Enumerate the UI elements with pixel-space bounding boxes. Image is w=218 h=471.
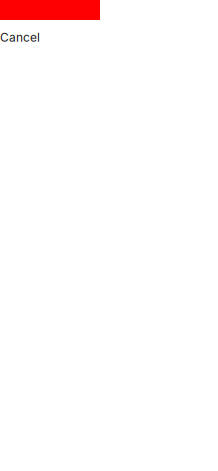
staticText: Cancel	[0, 30, 40, 44]
